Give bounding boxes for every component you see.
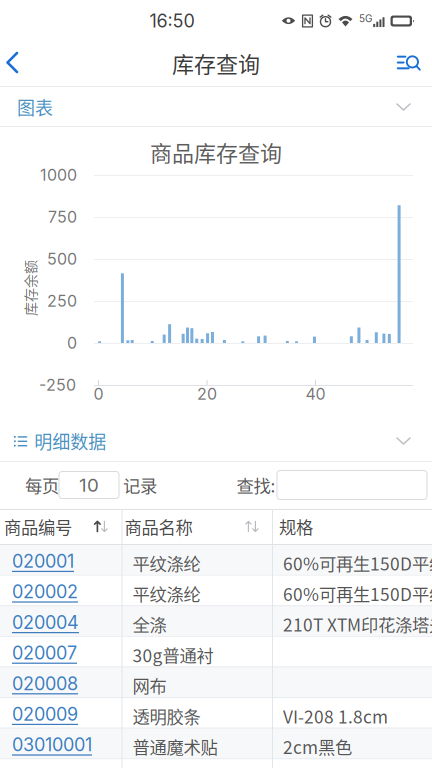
staticText: -250: [39, 375, 76, 395]
button[interactable]: 020004: [12, 611, 79, 633]
staticText: 210T XTM印花涤塔夫: [283, 611, 432, 637]
staticText: 每页: [25, 472, 59, 498]
staticText: 60%可再生150D平纹绉: [283, 550, 432, 575]
button[interactable]: 明细数据: [0, 420, 432, 462]
button[interactable]: 020008: [12, 673, 78, 694]
button[interactable]: 020002: [12, 581, 78, 603]
staticText: 平纹涤纶: [132, 581, 200, 606]
staticText: 1000: [40, 165, 77, 185]
staticText: 03010001: [12, 734, 92, 756]
staticText: VI-208 1.8cm: [283, 703, 388, 728]
button[interactable]: 020009: [12, 703, 78, 725]
staticText: 记录: [123, 472, 157, 498]
staticText: 750: [48, 207, 77, 227]
staticText: 平纹涤纶: [132, 550, 200, 575]
staticText: 30g普通衬: [132, 642, 213, 667]
staticText: 500: [47, 249, 77, 269]
staticText: 40: [305, 384, 325, 404]
button[interactable]: Rows per page: [59, 471, 119, 498]
staticText: 020007: [12, 642, 77, 664]
button[interactable]: Back: [0, 40, 46, 86]
staticText: 5G: [359, 12, 372, 25]
staticText: 网布: [132, 673, 166, 698]
staticText: 库存余额: [2, 278, 58, 298]
staticText: 明细数据: [34, 428, 106, 454]
staticText: 0: [93, 384, 103, 404]
staticText: 图表: [17, 94, 53, 120]
staticText: 020002: [12, 581, 78, 603]
staticText: 透明胶条: [132, 703, 200, 728]
button[interactable]: 03010001: [12, 734, 92, 756]
staticText: 10: [79, 474, 99, 496]
staticText: 查找:: [236, 472, 275, 498]
button[interactable]: Filter and search: [386, 40, 432, 86]
staticText: 20: [197, 384, 217, 404]
staticText: 规格: [279, 514, 313, 539]
staticText: 0: [67, 333, 77, 353]
staticText: 020004: [12, 611, 79, 633]
staticText: 2cm黑色: [283, 734, 352, 759]
staticText: 020008: [12, 673, 78, 694]
staticText: 全涤: [132, 611, 166, 637]
staticText: 250: [47, 291, 77, 311]
staticText: 60%可再生150D平纹绉: [283, 581, 432, 606]
button[interactable]: 020007: [12, 642, 77, 664]
staticText: 商品编号: [4, 514, 72, 539]
staticText: 020001: [12, 550, 74, 572]
button[interactable]: 图表: [0, 87, 432, 127]
staticText: 商品库存查询: [150, 136, 282, 168]
staticText: 020009: [12, 703, 78, 725]
staticText: 16:50: [149, 10, 194, 32]
button[interactable]: Search: [277, 470, 427, 499]
staticText: 商品名称: [124, 514, 192, 539]
staticText: 普通魔术贴: [132, 734, 217, 759]
button[interactable]: 020001: [12, 550, 74, 572]
staticText: 库存查询: [172, 47, 260, 79]
